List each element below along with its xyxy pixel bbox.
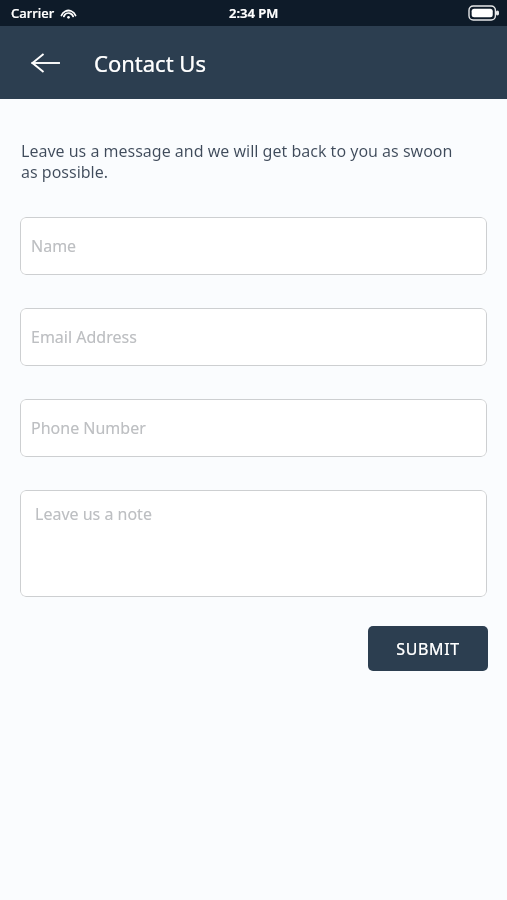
button[interactable]: SUBMIT xyxy=(368,626,488,671)
staticText: SUBMIT xyxy=(396,638,460,660)
staticText: Contact Us xyxy=(94,48,206,78)
button[interactable]: Back xyxy=(22,40,68,86)
button[interactable]: Email Address xyxy=(20,308,487,366)
staticText: Email Address xyxy=(31,326,137,348)
staticText: Carrier xyxy=(11,4,55,22)
staticText: 2:34 PM xyxy=(229,4,279,22)
staticText: Name xyxy=(31,235,77,257)
staticText: Phone Number xyxy=(31,417,146,439)
staticText: Leave us a note xyxy=(35,503,152,525)
button[interactable]: Leave us a note xyxy=(20,490,487,597)
button[interactable]: Phone Number xyxy=(20,399,487,457)
button[interactable]: Name xyxy=(20,217,487,275)
staticText: Leave us a message and we will get back … xyxy=(21,140,467,183)
